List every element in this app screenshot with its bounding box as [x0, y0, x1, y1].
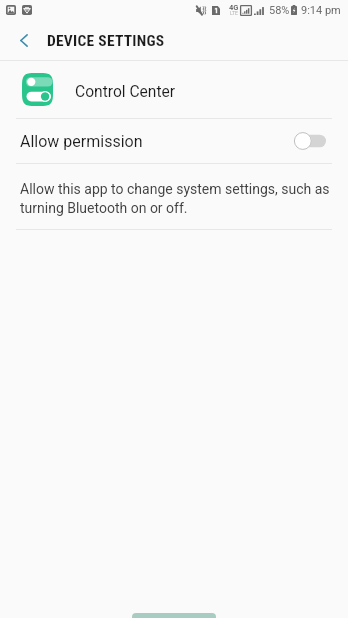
button[interactable]: Control Center — [0, 61, 348, 118]
staticText: 4G — [229, 3, 239, 12]
button[interactable]: Back — [0, 21, 47, 60]
staticText: Allow this app to change system settings… — [20, 181, 330, 217]
staticText: Control Center — [75, 83, 176, 101]
staticText: 9:14 pm — [301, 4, 341, 17]
staticText: Allow permission — [20, 132, 143, 151]
button[interactable]: Allow permission — [0, 119, 348, 163]
staticText: 58% — [269, 4, 290, 17]
staticText: DEVICE SETTINGS — [47, 32, 165, 50]
button[interactable]: Allow permission toggle — [294, 132, 326, 150]
staticText: LTE — [230, 10, 238, 16]
